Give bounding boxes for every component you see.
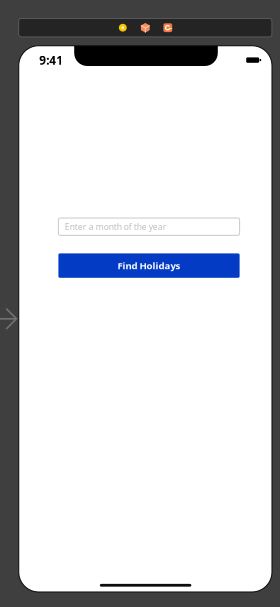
button[interactable]: Device <box>134 19 157 37</box>
button[interactable]: Restart app <box>157 19 179 37</box>
button[interactable]: Appearance <box>112 19 134 37</box>
staticText: Enter a month of the year <box>65 221 167 232</box>
staticText: 9:41 <box>39 52 63 68</box>
button[interactable]: Find Holidays <box>58 253 240 278</box>
staticText: Find Holidays <box>117 259 180 272</box>
